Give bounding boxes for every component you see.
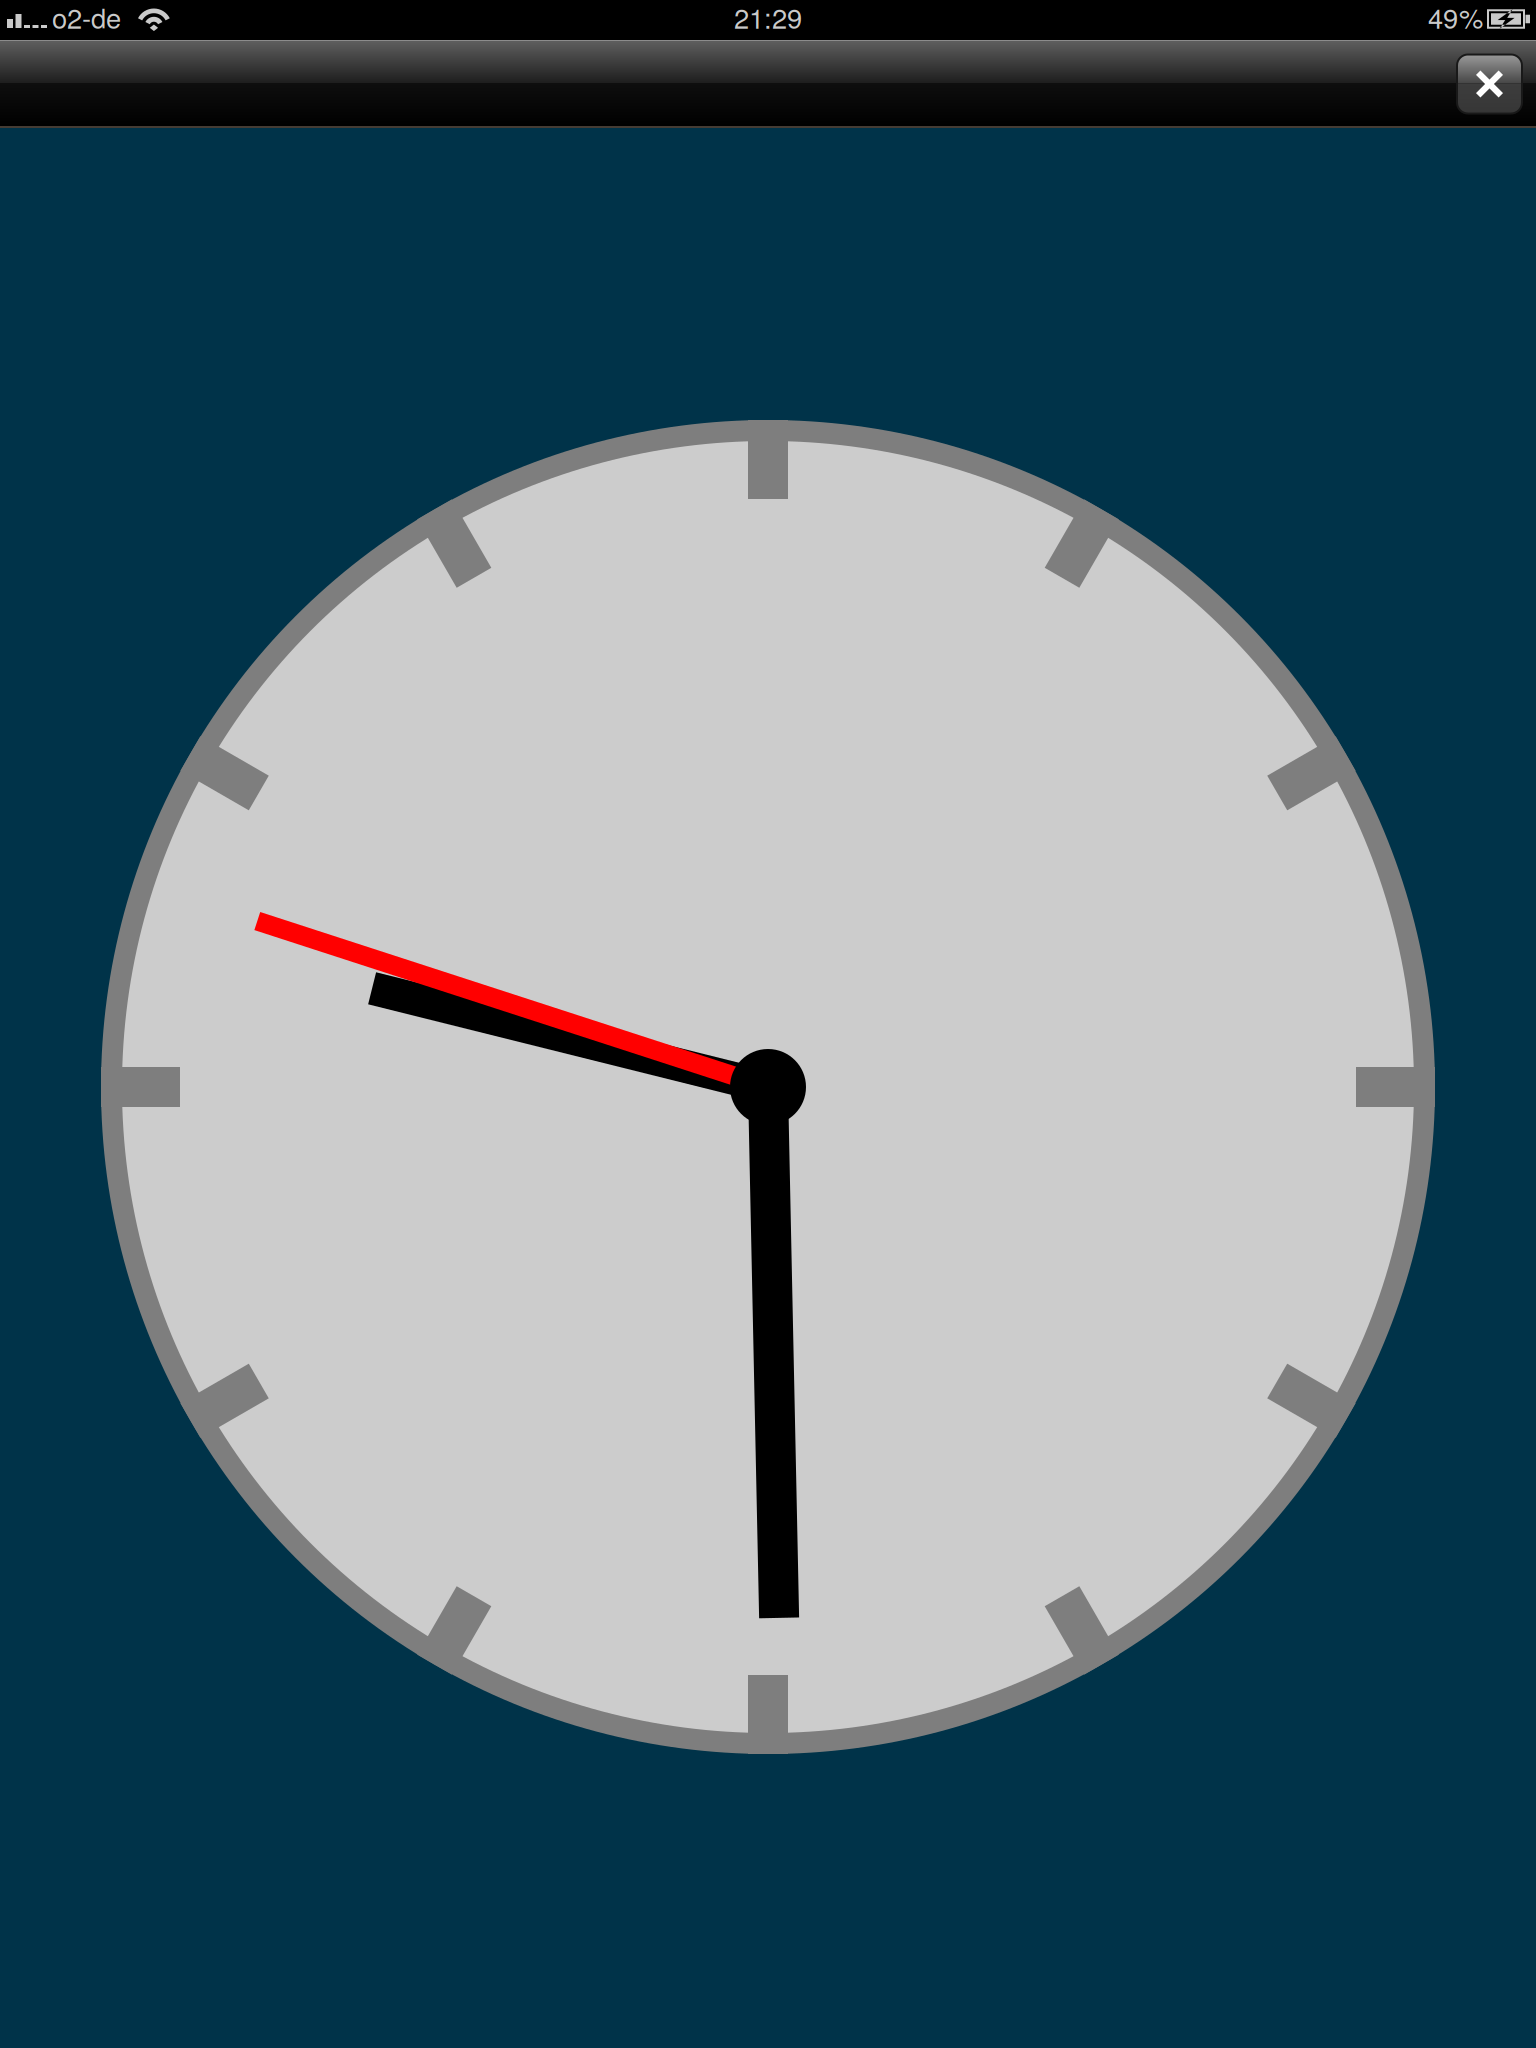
staticText: 49	[1428, 0, 1458, 36]
staticText: 21:29	[734, 0, 802, 36]
staticText: o2-de	[52, 0, 121, 36]
button[interactable]: Close	[1457, 54, 1522, 113]
staticText: %	[1459, 0, 1483, 36]
